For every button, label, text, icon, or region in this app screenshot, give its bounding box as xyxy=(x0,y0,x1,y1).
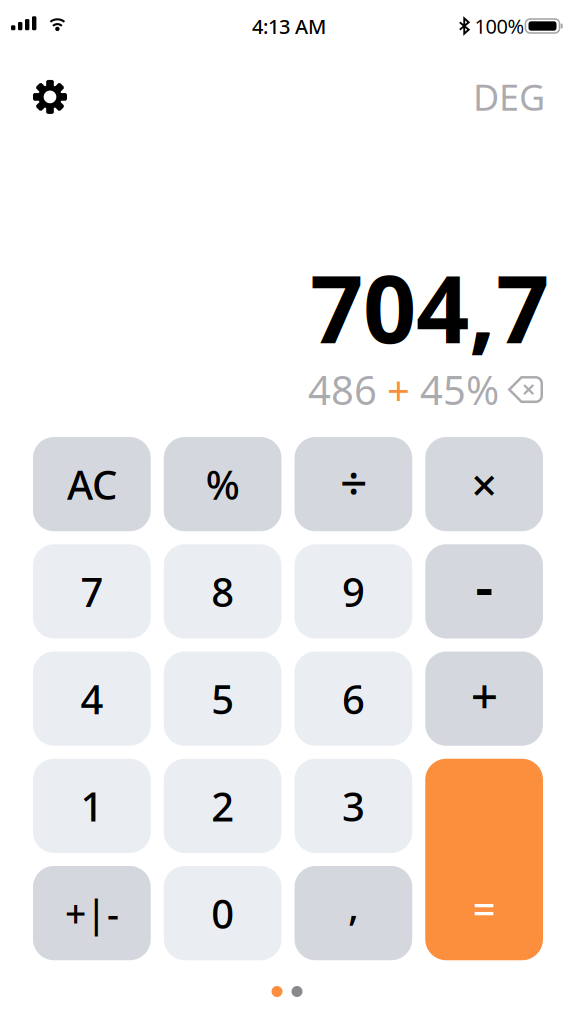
button[interactable]: 0 xyxy=(164,866,282,960)
staticText: 9 xyxy=(342,565,365,618)
button[interactable]: + xyxy=(425,651,543,746)
staticText: 7 xyxy=(80,565,103,618)
button[interactable]: 2 xyxy=(164,759,282,853)
staticText: 4 xyxy=(80,672,103,725)
staticText: 0 xyxy=(211,887,234,940)
button[interactable]: 6 xyxy=(294,651,412,746)
button[interactable]: = xyxy=(425,759,543,960)
staticText: 3 xyxy=(342,779,365,832)
button[interactable]: Settings xyxy=(0,66,83,128)
button[interactable]: 5 xyxy=(164,651,282,746)
staticText: 486 xyxy=(308,363,387,416)
button[interactable]: 1 xyxy=(33,759,151,853)
staticText: × xyxy=(471,454,497,514)
staticText: % xyxy=(206,458,240,511)
button[interactable]: 8 xyxy=(164,544,282,638)
button[interactable]: AC xyxy=(33,437,151,531)
staticText: +|- xyxy=(65,888,119,938)
staticText: ÷ xyxy=(340,450,367,514)
staticText: 5 xyxy=(211,672,234,725)
button[interactable]: - xyxy=(425,544,543,638)
button[interactable]: 7 xyxy=(33,544,151,638)
button[interactable]: DEG xyxy=(457,63,576,131)
button[interactable]: 4 xyxy=(33,651,151,746)
staticText: 1 xyxy=(80,779,103,832)
staticText: , xyxy=(348,879,359,932)
staticText: DEG xyxy=(473,73,545,121)
button[interactable]: % xyxy=(164,437,282,531)
button[interactable]: ÷ xyxy=(294,437,412,531)
staticText: 100% xyxy=(474,13,524,39)
staticText: 4:13 AM xyxy=(252,13,326,40)
button[interactable]: 9 xyxy=(294,544,412,638)
staticText: - xyxy=(475,548,493,623)
staticText: 45% xyxy=(410,363,499,416)
staticText: + xyxy=(471,663,498,726)
staticText: 2 xyxy=(211,779,234,832)
staticText: 8 xyxy=(211,565,234,618)
staticText: 704,7 xyxy=(310,245,549,369)
button[interactable]: +|- xyxy=(33,866,151,960)
staticText: + xyxy=(387,363,410,416)
staticText: AC xyxy=(67,458,117,511)
staticText: = xyxy=(473,882,496,935)
button[interactable]: , xyxy=(294,866,412,960)
button[interactable]: Delete xyxy=(499,376,543,403)
button[interactable]: × xyxy=(425,437,543,531)
staticText: 6 xyxy=(342,672,365,725)
button[interactable]: 3 xyxy=(294,759,412,853)
